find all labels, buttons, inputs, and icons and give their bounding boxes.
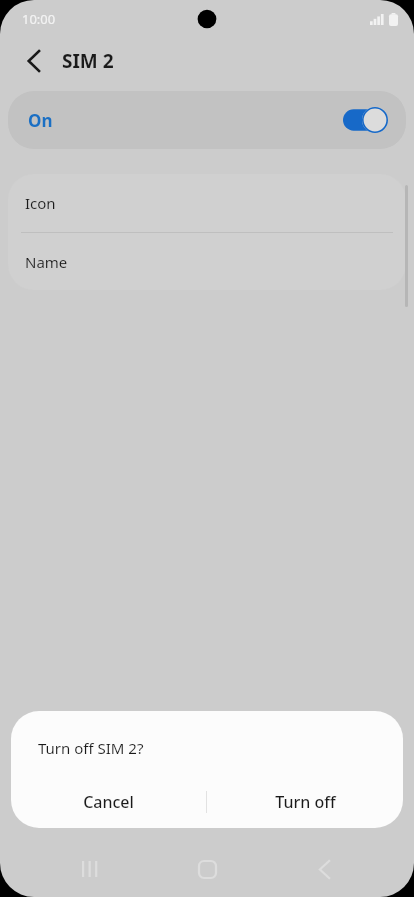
staticText: Name	[25, 252, 68, 272]
staticText: Turn off SIM 2?	[38, 738, 144, 758]
button[interactable]: On	[8, 91, 406, 149]
staticText: 10:00	[22, 10, 56, 28]
button[interactable]: Home	[183, 845, 231, 893]
staticText: On	[28, 109, 53, 132]
button[interactable]: Recents	[66, 845, 114, 893]
staticText: Turn off	[275, 791, 336, 813]
staticText: Icon	[25, 193, 56, 213]
button[interactable]: Icon	[8, 174, 406, 232]
staticText: Cancel	[83, 791, 134, 813]
button[interactable]: Back	[16, 43, 52, 79]
staticText: SIM 2	[62, 48, 114, 74]
button[interactable]: Cancel	[11, 776, 206, 828]
button[interactable]: Name	[8, 233, 406, 290]
button[interactable]: Turn off	[207, 776, 403, 828]
